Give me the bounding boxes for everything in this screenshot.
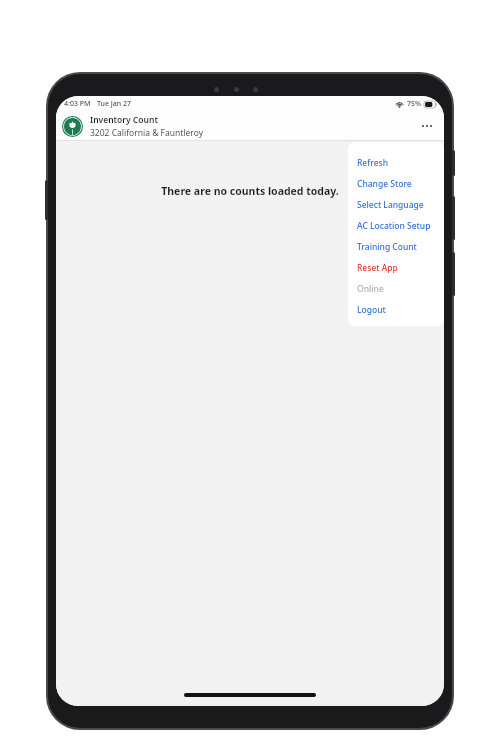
button[interactable]: Training Count [348,236,444,257]
staticText: Inventory Count [90,114,158,126]
staticText: Training Count [357,241,417,253]
button[interactable]: Select Language [348,194,444,215]
staticText: 75% [407,99,421,109]
staticText: Refresh [357,157,389,169]
staticText: AC Location Setup [357,220,431,232]
button[interactable]: Reset App [348,257,444,278]
staticText: Online [357,283,384,295]
staticText: Change Store [357,178,412,190]
staticText: 3202 California & Fauntleroy [90,127,204,139]
staticText: Select Language [357,199,424,211]
button[interactable]: Refresh [348,152,444,173]
button[interactable]: Online [348,278,444,299]
staticText: Logout [357,304,386,316]
staticText: 4:03 PM [64,99,91,109]
button[interactable]: Logout [348,299,444,320]
staticText: There are no counts loaded today. [161,184,339,198]
staticText: Reset App [357,262,398,274]
button[interactable]: Change Store [348,173,444,194]
staticText: Tue Jan 27 [97,99,132,109]
button[interactable]: More options [416,115,438,137]
button[interactable]: AC Location Setup [348,215,444,236]
